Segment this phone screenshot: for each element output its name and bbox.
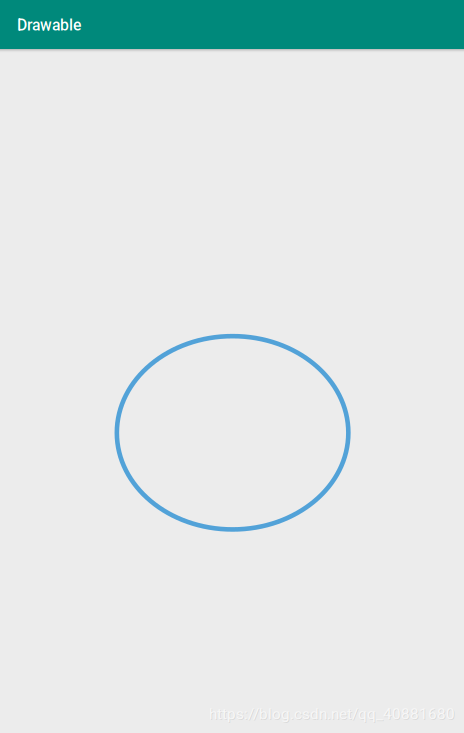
- staticText: https://blog.csdn.net/qq_40881680: [209, 705, 455, 723]
- staticText: Drawable: [17, 16, 81, 34]
- staticText: https://blog.csdn.net/qq_40881680: [210, 706, 456, 724]
- button[interactable]: Drawable: [0, 0, 464, 49]
